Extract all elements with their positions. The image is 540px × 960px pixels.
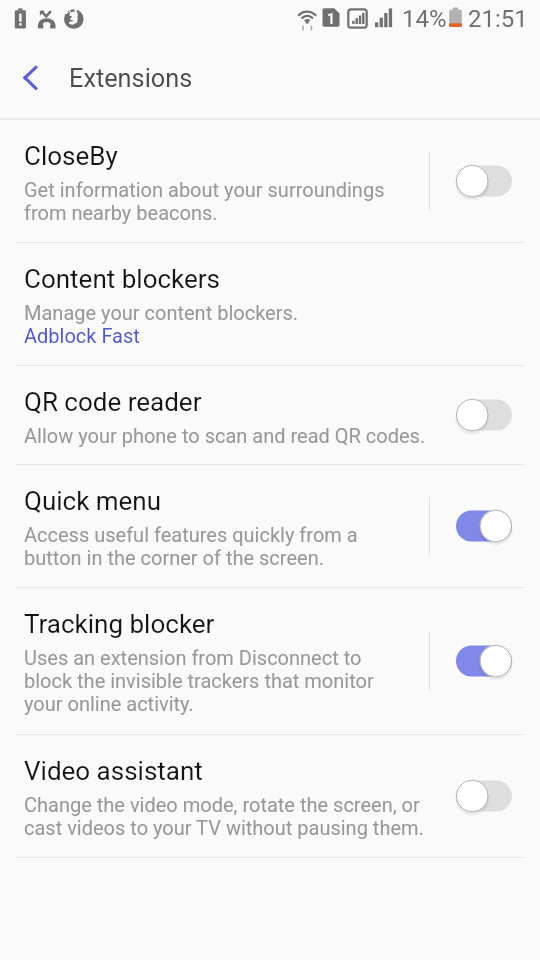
staticText: Get information about your surroundings	[24, 178, 385, 201]
staticText: CloseBy	[24, 141, 118, 171]
staticText: Video assistant	[24, 756, 203, 786]
button[interactable]: Quick menu	[0, 465, 540, 587]
staticText: cast videos to your TV without pausing t…	[24, 816, 424, 839]
staticText: Extensions	[69, 64, 193, 94]
button[interactable]: Video assistant	[0, 735, 540, 857]
staticText: 14%	[402, 5, 447, 33]
button[interactable]: Switch off	[440, 735, 520, 857]
staticText: from nearby beacons.	[24, 201, 218, 224]
button[interactable]: Switch on	[440, 465, 520, 587]
staticText: 1	[327, 11, 335, 27]
staticText: Quick menu	[24, 486, 162, 516]
staticText: Access useful features quickly from a	[24, 523, 358, 546]
staticText: QR code reader	[24, 387, 202, 417]
staticText: Change the video mode, rotate the screen…	[24, 793, 420, 816]
staticText: button in the corner of the screen.	[24, 546, 324, 569]
staticText: Tracking blocker	[24, 609, 215, 639]
button[interactable]: Switch off	[440, 120, 520, 242]
staticText: Allow your phone to scan and read QR cod…	[24, 424, 426, 447]
staticText: Manage your content blockers.	[24, 301, 299, 324]
button[interactable]: Switch on	[440, 588, 520, 734]
button[interactable]: QR code reader	[0, 366, 540, 464]
staticText: 21:51	[468, 5, 528, 33]
button[interactable]: Tracking blocker	[0, 588, 540, 734]
button[interactable]: Content blockers	[0, 243, 540, 365]
staticText: Content blockers	[24, 264, 221, 294]
staticText: block the invisible trackers that monito…	[24, 669, 374, 692]
staticText: Uses an extension from Disconnect to	[24, 646, 362, 669]
button[interactable]: CloseBy	[0, 120, 540, 242]
button[interactable]: Navigate up	[8, 55, 56, 103]
staticText: your online activity.	[24, 692, 194, 715]
button[interactable]: Switch off	[440, 366, 520, 464]
staticText: Adblock Fast	[24, 324, 140, 347]
